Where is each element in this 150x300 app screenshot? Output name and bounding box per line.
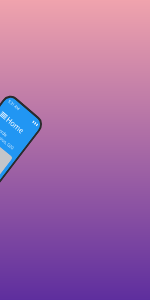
- staticText: Keywords: Coronavirus, G20: [0, 121, 25, 156]
- button[interactable]: Menu: [0, 108, 10, 122]
- staticText: UK's Johnson virus positive as outbreaks…: [0, 139, 8, 197]
- staticText: ▮ ▮ ▮: [32, 119, 39, 127]
- staticText: 5:31 AM: [7, 98, 21, 111]
- button[interactable]: Search: [20, 127, 32, 140]
- staticText: Home: [4, 114, 26, 136]
- button[interactable]: UK's Johnson virus positive as outbreaks…: [0, 133, 13, 203]
